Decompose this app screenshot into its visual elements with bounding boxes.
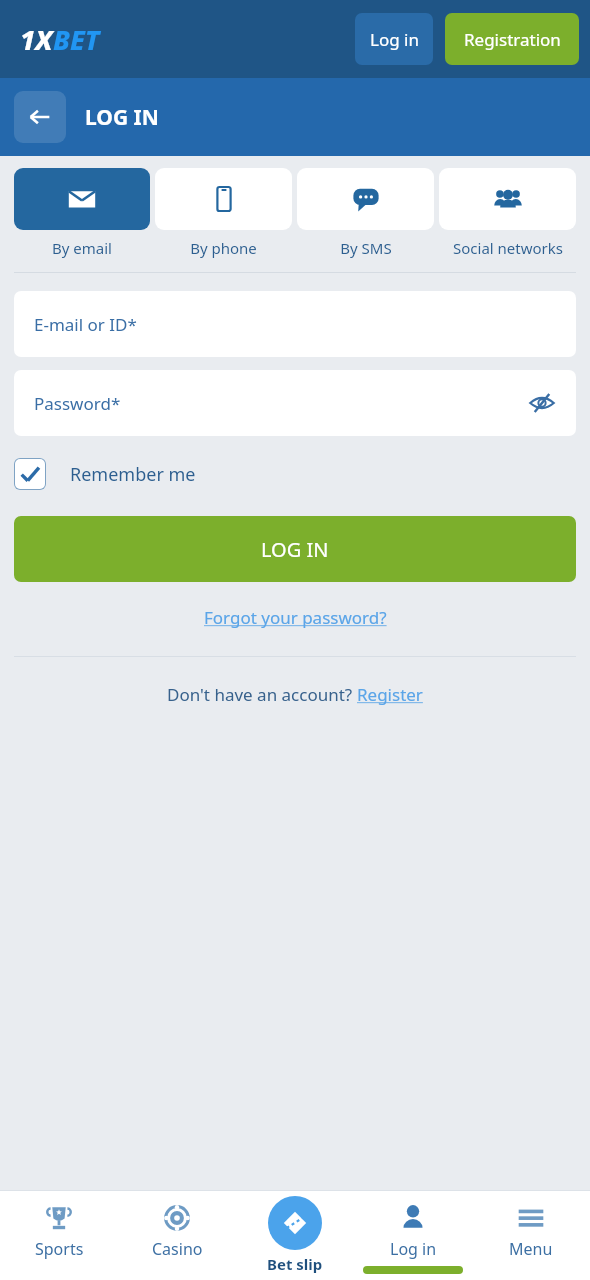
button[interactable]: Casino bbox=[118, 1190, 236, 1260]
staticText: Don't have an account? bbox=[167, 683, 357, 706]
button[interactable]: Sports bbox=[0, 1190, 118, 1260]
staticText: By phone bbox=[190, 238, 257, 258]
button[interactable]: Log in bbox=[355, 13, 433, 65]
staticText: 1X bbox=[20, 21, 53, 58]
button[interactable]: Log in bbox=[354, 1190, 472, 1280]
staticText: BET bbox=[53, 21, 100, 58]
staticText: Sports bbox=[35, 1238, 84, 1260]
button[interactable]: Bet slip bbox=[236, 1190, 354, 1280]
button[interactable]: Show password bbox=[524, 385, 560, 421]
staticText: Remember me bbox=[70, 462, 196, 487]
staticText: Bet slip bbox=[267, 1254, 323, 1274]
staticText: Casino bbox=[152, 1238, 203, 1260]
staticText: LOG IN bbox=[85, 103, 159, 132]
staticText: By SMS bbox=[340, 238, 392, 258]
button[interactable]: Forgot your password? bbox=[198, 600, 393, 635]
staticText: Log in bbox=[370, 28, 419, 51]
staticText: LOG IN bbox=[261, 536, 329, 563]
button[interactable]: LOG IN bbox=[14, 516, 576, 582]
staticText: Social networks bbox=[453, 238, 563, 258]
button[interactable]: Password* bbox=[14, 370, 576, 436]
button[interactable]: By email bbox=[14, 168, 150, 258]
button[interactable]: Back bbox=[14, 91, 66, 143]
staticText: Password* bbox=[34, 392, 121, 415]
staticText: Log in bbox=[390, 1238, 437, 1260]
button[interactable]: Remember me bbox=[14, 458, 576, 490]
staticText: E-mail or ID* bbox=[34, 313, 137, 336]
button[interactable]: Register bbox=[357, 683, 423, 706]
staticText: Menu bbox=[509, 1238, 553, 1260]
button[interactable]: Registration bbox=[445, 13, 579, 65]
button[interactable]: Menu bbox=[472, 1190, 590, 1260]
staticText: By email bbox=[52, 238, 112, 258]
button[interactable]: Social networks bbox=[439, 168, 576, 258]
button[interactable]: By SMS bbox=[297, 168, 434, 258]
button[interactable]: E-mail or ID* bbox=[14, 291, 576, 357]
staticText: Registration bbox=[464, 28, 561, 51]
button[interactable]: By phone bbox=[155, 168, 292, 258]
